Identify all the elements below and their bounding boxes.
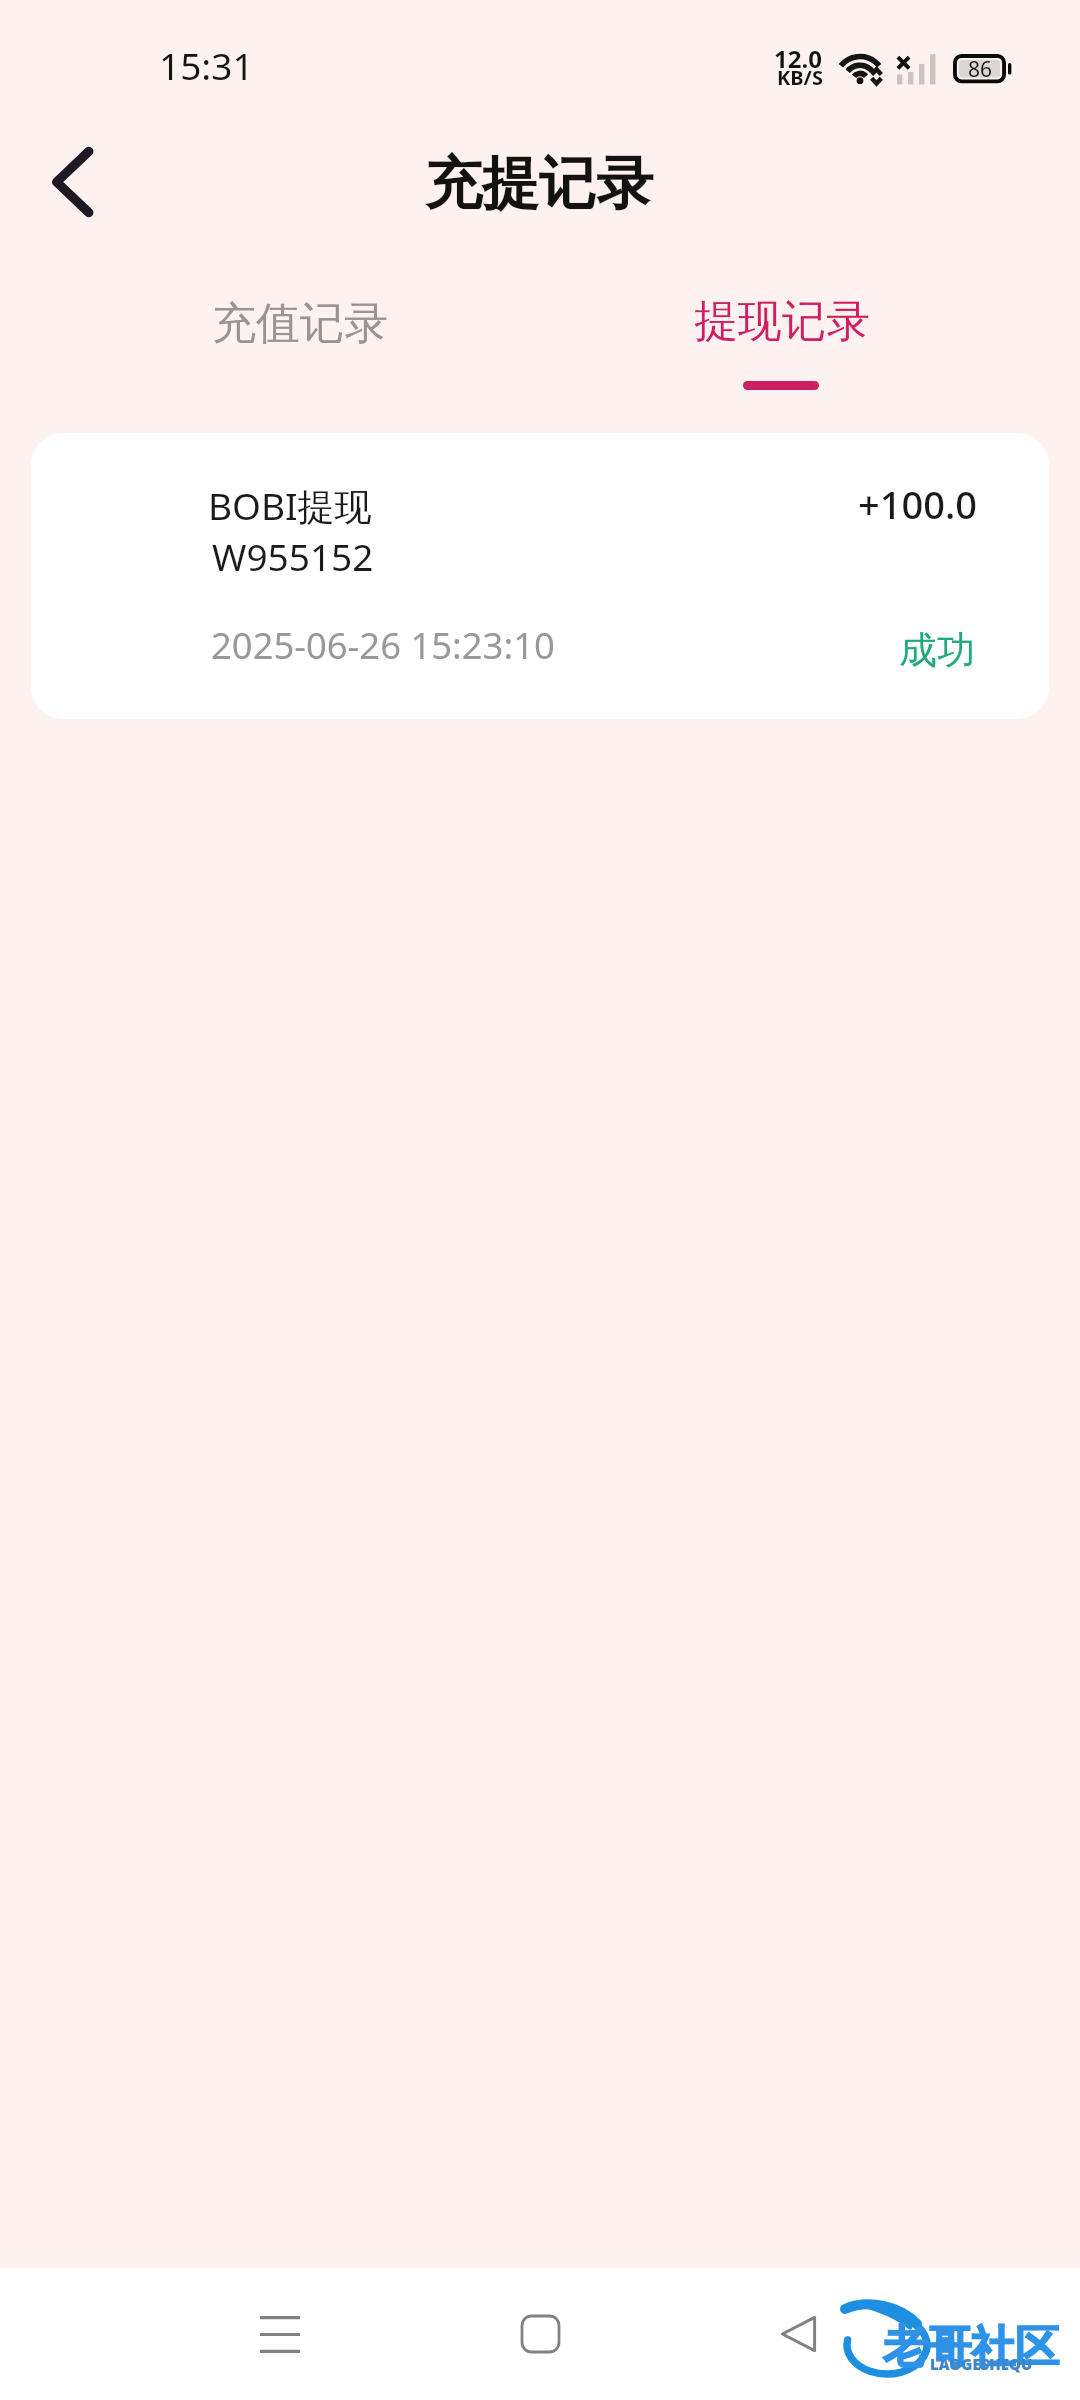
staticText: 老哥社区: [883, 2320, 1059, 2375]
button[interactable]: 充值记录: [0, 252, 540, 408]
staticText: BOBI提现: [208, 480, 372, 531]
button[interactable]: Recent apps: [220, 2274, 340, 2394]
staticText: LAOGESHEQU: [930, 2354, 1033, 2374]
staticText: 86: [968, 55, 993, 84]
staticText: 提现记录: [694, 294, 870, 349]
staticText: 15:31: [159, 40, 254, 90]
staticText: 成功: [899, 626, 975, 674]
staticText: 12.0: [774, 42, 822, 75]
staticText: +100.0: [858, 478, 978, 530]
button[interactable]: 提现记录: [540, 252, 1080, 408]
staticText: 2025-06-26 15:23:10: [211, 620, 555, 670]
staticText: KB/S: [777, 64, 823, 91]
button[interactable]: BOBI提现: [31, 433, 1049, 719]
button[interactable]: Home: [480, 2274, 600, 2394]
staticText: W955152: [212, 531, 374, 581]
staticText: 充值记录: [212, 296, 388, 351]
staticText: 充提记录: [425, 148, 653, 220]
button[interactable]: Back: [738, 2274, 858, 2394]
button[interactable]: Back: [24, 134, 120, 230]
